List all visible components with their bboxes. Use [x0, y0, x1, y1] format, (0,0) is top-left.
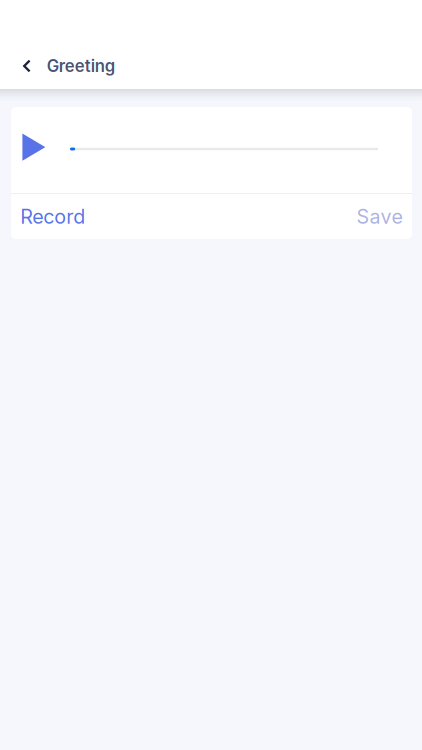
- staticText: Save: [356, 205, 402, 228]
- button[interactable]: Play: [11, 107, 70, 193]
- button[interactable]: Save: [344, 194, 412, 239]
- staticText: Greeting: [47, 56, 115, 76]
- button[interactable]: Back to Greeting: [0, 44, 127, 88]
- button[interactable]: Record: [11, 194, 97, 239]
- staticText: Record: [20, 205, 85, 228]
